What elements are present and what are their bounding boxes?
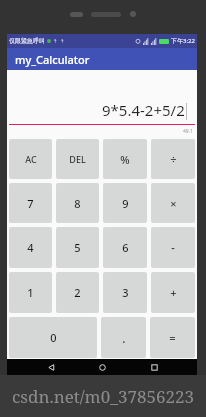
staticText: 49.1 xyxy=(183,128,193,135)
button[interactable]: + xyxy=(151,272,195,313)
staticText: 6 xyxy=(122,240,129,255)
staticText: csdn.net/m0_37856223 xyxy=(12,385,195,408)
button[interactable]: = xyxy=(150,317,195,358)
staticText: my_Calculator xyxy=(15,52,90,67)
staticText: 3 xyxy=(122,285,129,300)
button[interactable]: × xyxy=(151,183,195,223)
button[interactable]: 5 xyxy=(56,227,99,268)
staticText: ⇡ xyxy=(53,38,58,44)
staticText: = xyxy=(169,330,176,345)
button[interactable]: 9 xyxy=(103,183,147,223)
staticText: 9*5.4-2+5/2 xyxy=(102,100,185,120)
staticText: AC xyxy=(25,153,37,165)
button[interactable]: Home xyxy=(94,359,110,375)
staticText: 5 xyxy=(74,240,81,255)
staticText: 1 xyxy=(27,285,34,300)
button[interactable]: % xyxy=(103,139,147,179)
staticText: % xyxy=(120,152,130,167)
button[interactable]: DEL xyxy=(56,139,99,179)
button[interactable]: 1 xyxy=(9,272,52,313)
button[interactable]: 3 xyxy=(103,272,147,313)
staticText: - xyxy=(171,240,175,255)
staticText: ÷ xyxy=(170,152,177,167)
button[interactable]: Recents xyxy=(146,359,162,375)
staticText: 8 xyxy=(74,196,81,211)
staticText: 2 xyxy=(74,285,81,300)
button[interactable]: AC xyxy=(9,139,52,179)
staticText: 9 xyxy=(122,196,129,211)
staticText: . xyxy=(122,330,126,346)
button[interactable]: 6 xyxy=(103,227,147,268)
button[interactable]: 0 xyxy=(9,317,97,358)
staticText: 仅限紧急呼叫 xyxy=(9,37,45,45)
button[interactable]: 4 xyxy=(9,227,52,268)
staticText: 0 xyxy=(50,330,57,345)
staticText: DEL xyxy=(69,153,86,165)
staticText: 下午3:22 xyxy=(171,37,195,45)
staticText: + xyxy=(170,285,177,300)
button[interactable]: Back xyxy=(43,359,59,375)
button[interactable]: 7 xyxy=(9,183,52,223)
button[interactable]: ÷ xyxy=(151,139,195,179)
button[interactable]: . xyxy=(101,317,146,358)
staticText: 7 xyxy=(27,196,34,211)
staticText: ⇡ xyxy=(60,38,65,44)
button[interactable]: - xyxy=(151,227,195,268)
staticText: 4 xyxy=(27,240,34,255)
button[interactable]: 8 xyxy=(56,183,99,223)
button[interactable]: 2 xyxy=(56,272,99,313)
staticText: × xyxy=(170,196,177,211)
